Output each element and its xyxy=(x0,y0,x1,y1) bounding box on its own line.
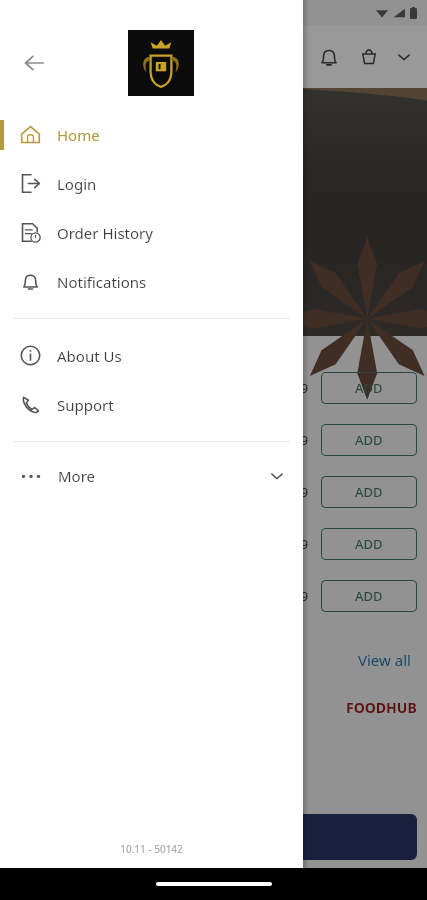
staticText: Home xyxy=(57,125,100,145)
staticText: Login xyxy=(57,174,97,194)
button[interactable]: More xyxy=(0,452,303,500)
staticText: Support xyxy=(57,395,114,415)
button[interactable]: £5.99 xyxy=(0,518,427,570)
button[interactable]: ADD xyxy=(321,424,417,456)
button[interactable]: ADD xyxy=(321,528,417,560)
staticText: More xyxy=(58,466,96,486)
staticText: Order History xyxy=(57,223,153,243)
staticText: ADD xyxy=(355,535,383,553)
staticText: ADD xyxy=(355,379,383,397)
staticText: ADD xyxy=(355,431,383,449)
button[interactable]: Expand xyxy=(389,42,419,72)
button[interactable]: ADD xyxy=(321,580,417,612)
staticText: ADD xyxy=(355,587,383,605)
button[interactable]: Notifications xyxy=(0,257,303,306)
staticText: £5.99 xyxy=(275,535,309,553)
staticText: Notifications xyxy=(57,272,147,292)
staticText: ADD xyxy=(355,483,383,501)
staticText: £5.99 xyxy=(275,431,309,449)
button[interactable]: ADD xyxy=(321,476,417,508)
button[interactable]: Order History xyxy=(0,208,303,257)
button[interactable]: ADD xyxy=(321,372,417,404)
button[interactable]: £5.99 xyxy=(0,414,427,466)
staticText: £5.99 xyxy=(275,587,309,605)
button[interactable]: Cart xyxy=(349,37,389,77)
button[interactable]: Login xyxy=(0,159,303,208)
button[interactable]: £5.99 xyxy=(0,570,427,622)
button[interactable]: Support xyxy=(0,380,303,429)
staticText: View all xyxy=(358,650,411,670)
button[interactable]: Restaurant logo xyxy=(128,30,194,96)
button[interactable]: About Us xyxy=(0,331,303,380)
button[interactable] xyxy=(127,814,417,860)
button[interactable]: £5.99 xyxy=(0,362,427,414)
staticText: FOODHUB xyxy=(346,698,417,717)
staticText: £5.99 xyxy=(275,379,309,397)
button[interactable]: £5.99 xyxy=(0,466,427,518)
button[interactable]: Back xyxy=(12,41,56,85)
button[interactable]: Notifications xyxy=(309,37,349,77)
staticText: 10.11 - 50142 xyxy=(0,842,303,856)
button[interactable]: View all xyxy=(352,644,417,676)
staticText: £5.99 xyxy=(275,483,309,501)
staticText: About Us xyxy=(57,346,122,366)
button[interactable]: Home xyxy=(0,110,303,159)
